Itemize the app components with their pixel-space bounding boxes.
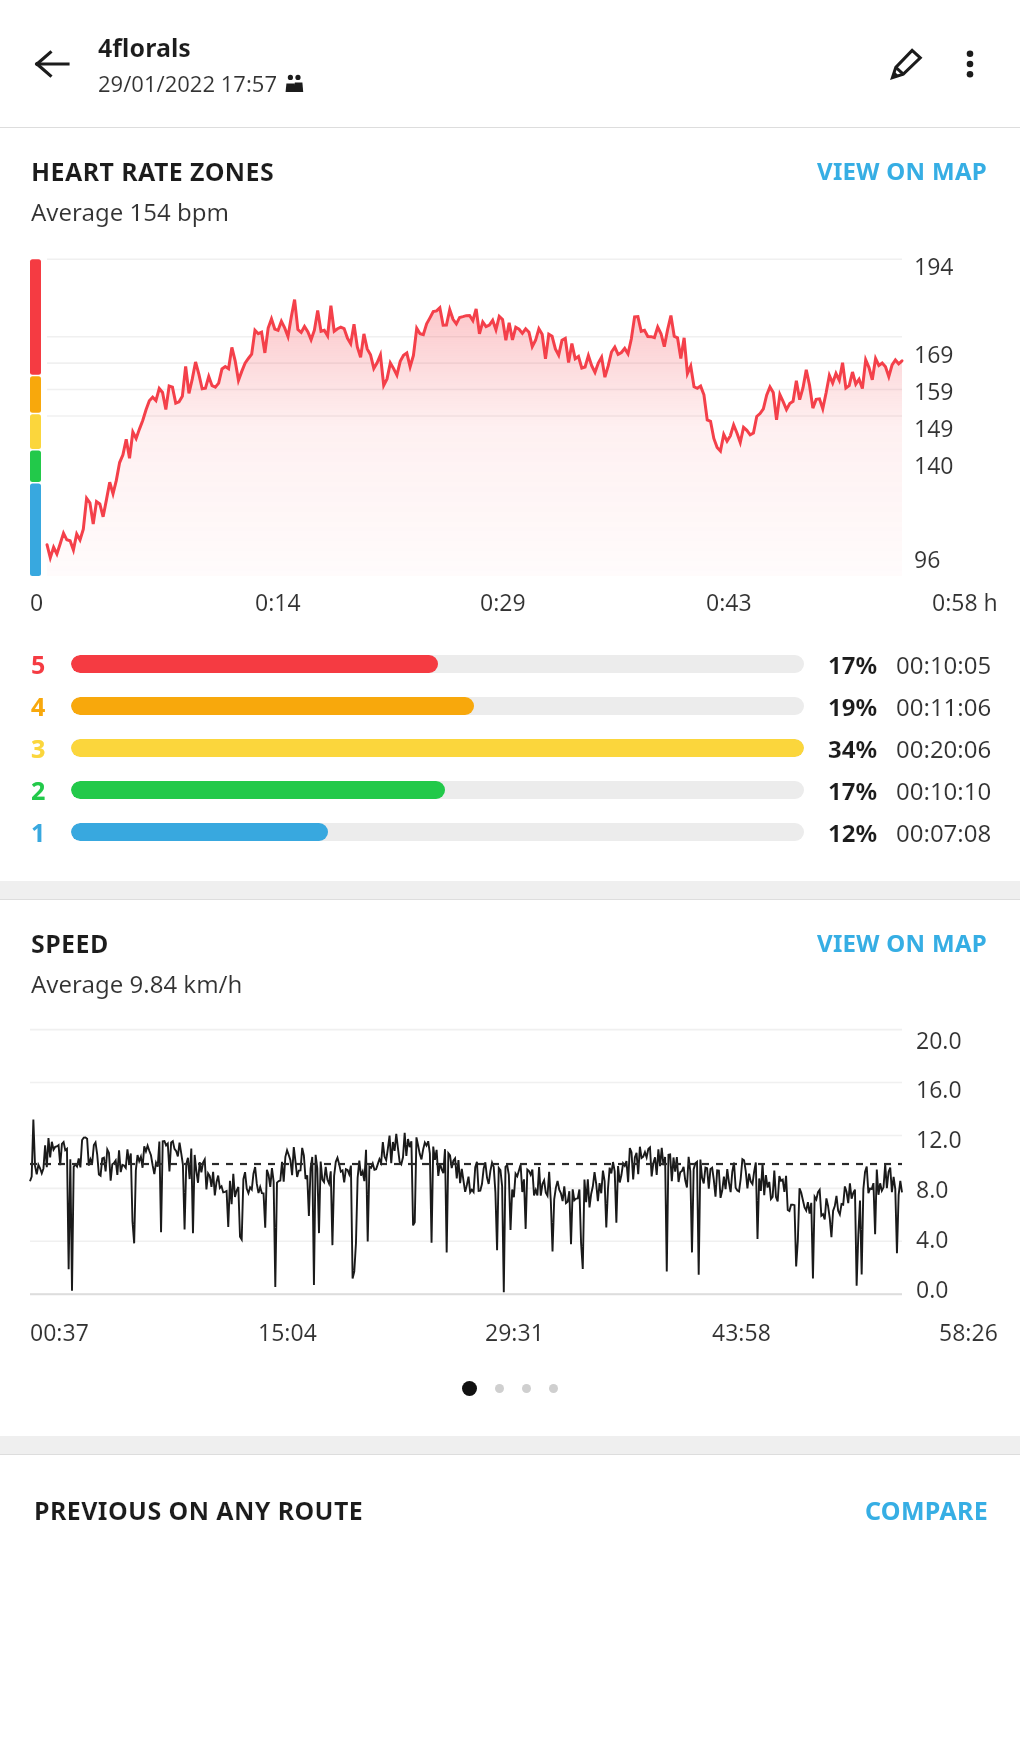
staticText: 169: [914, 338, 954, 369]
staticText: 16.0: [916, 1073, 962, 1104]
staticText: 00:10:10: [896, 774, 992, 807]
button[interactable]: Back: [24, 36, 80, 92]
button[interactable]: [462, 1381, 477, 1396]
staticText: 1: [31, 815, 71, 849]
staticText: 00:11:06: [896, 690, 992, 723]
button[interactable]: COMPARE: [861, 1489, 992, 1531]
staticText: 58:26: [939, 1316, 998, 1347]
staticText: 5: [31, 647, 71, 681]
staticText: 194: [914, 250, 954, 281]
button[interactable]: [495, 1384, 504, 1393]
staticText: SPEED: [31, 926, 813, 960]
button[interactable]: More options: [938, 32, 1002, 96]
staticText: 159: [914, 375, 954, 406]
button[interactable]: [549, 1384, 558, 1393]
staticText: 0:14: [255, 586, 480, 617]
staticText: 29/01/2022 17:57: [98, 68, 277, 98]
button[interactable]: 1: [0, 811, 1020, 853]
staticText: Average 154 bpm: [31, 195, 229, 228]
staticText: 4florals: [98, 30, 191, 64]
staticText: 3: [31, 731, 71, 765]
staticText: 0:43: [706, 586, 932, 617]
staticText: 4.0: [916, 1223, 949, 1254]
staticText: VIEW ON MAP: [817, 154, 988, 187]
button[interactable]: 4: [0, 685, 1020, 727]
staticText: Average 9.84 km/h: [31, 967, 243, 1000]
button[interactable]: 2: [0, 769, 1020, 811]
staticText: 29:31: [485, 1316, 712, 1347]
staticText: 12%: [828, 816, 896, 849]
staticText: HEART RATE ZONES: [31, 154, 813, 188]
staticText: 0:29: [480, 586, 706, 617]
staticText: 20.0: [916, 1024, 962, 1055]
staticText: 00:37: [30, 1316, 258, 1347]
staticText: PREVIOUS ON ANY ROUTE: [34, 1493, 861, 1527]
button[interactable]: VIEW ON MAP: [813, 150, 992, 191]
staticText: 19%: [828, 690, 896, 723]
staticText: 00:07:08: [896, 816, 992, 849]
staticText: 15:04: [258, 1316, 485, 1347]
staticText: 17%: [828, 774, 896, 807]
button[interactable]: 3: [0, 727, 1020, 769]
staticText: 12.0: [916, 1123, 962, 1154]
button[interactable]: Edit: [874, 32, 938, 96]
staticText: 2: [31, 773, 71, 807]
staticText: 140: [914, 449, 954, 480]
staticText: 43:58: [712, 1316, 939, 1347]
button[interactable]: 5: [0, 643, 1020, 685]
staticText: 00:10:05: [896, 648, 992, 681]
button[interactable]: VIEW ON MAP: [813, 922, 992, 963]
staticText: VIEW ON MAP: [817, 926, 988, 959]
staticText: 00:20:06: [896, 732, 992, 765]
staticText: COMPARE: [865, 1493, 988, 1527]
staticText: 96: [914, 543, 941, 574]
staticText: 34%: [828, 732, 896, 765]
staticText: 4: [31, 689, 71, 723]
staticText: 0.0: [916, 1273, 949, 1304]
staticText: 0: [30, 586, 255, 617]
staticText: 0:58 h: [932, 586, 998, 617]
staticText: 8.0: [916, 1173, 949, 1204]
button[interactable]: [522, 1384, 531, 1393]
staticText: 149: [914, 412, 954, 443]
staticText: 17%: [828, 648, 896, 681]
